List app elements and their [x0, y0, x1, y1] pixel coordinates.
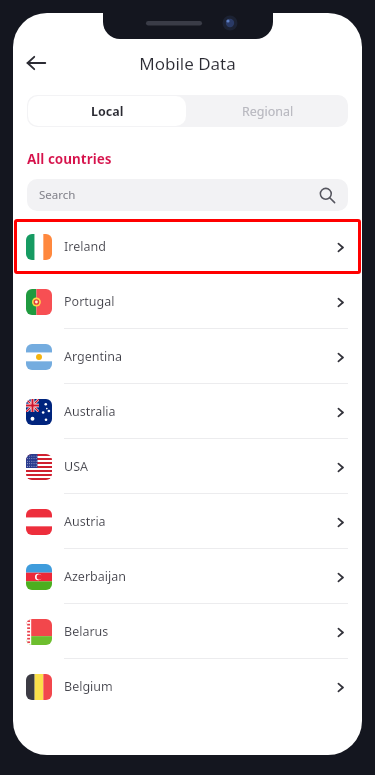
button[interactable]: Australia — [13, 384, 362, 439]
button[interactable]: Azerbaijan — [13, 549, 362, 604]
button[interactable]: Austria — [13, 494, 362, 549]
staticText: Belarus — [64, 623, 333, 640]
button[interactable]: USA — [13, 439, 362, 494]
button[interactable]: Search — [27, 179, 348, 211]
button[interactable]: Argentina — [13, 329, 362, 384]
staticText: Australia — [64, 403, 333, 420]
staticText: Portugal — [64, 293, 333, 310]
staticText: Ireland — [64, 238, 333, 255]
staticText: Regional — [242, 103, 294, 120]
button[interactable]: Belarus — [13, 604, 362, 659]
staticText: Search — [39, 187, 76, 203]
button[interactable]: Ireland — [14, 219, 361, 274]
button[interactable]: Portugal — [13, 274, 362, 329]
staticText: Local — [91, 103, 124, 120]
button[interactable]: Back — [18, 45, 54, 81]
staticText: Austria — [64, 513, 333, 530]
staticText: USA — [64, 458, 333, 475]
staticText: Mobile Data — [139, 52, 236, 75]
staticText: Argentina — [64, 348, 333, 365]
button[interactable]: Regional — [187, 95, 348, 127]
staticText: Azerbaijan — [64, 568, 333, 585]
staticText: All countries — [27, 150, 112, 168]
staticText: Belgium — [64, 678, 333, 695]
button[interactable]: Local — [28, 96, 186, 126]
button[interactable]: Belgium — [13, 659, 362, 714]
